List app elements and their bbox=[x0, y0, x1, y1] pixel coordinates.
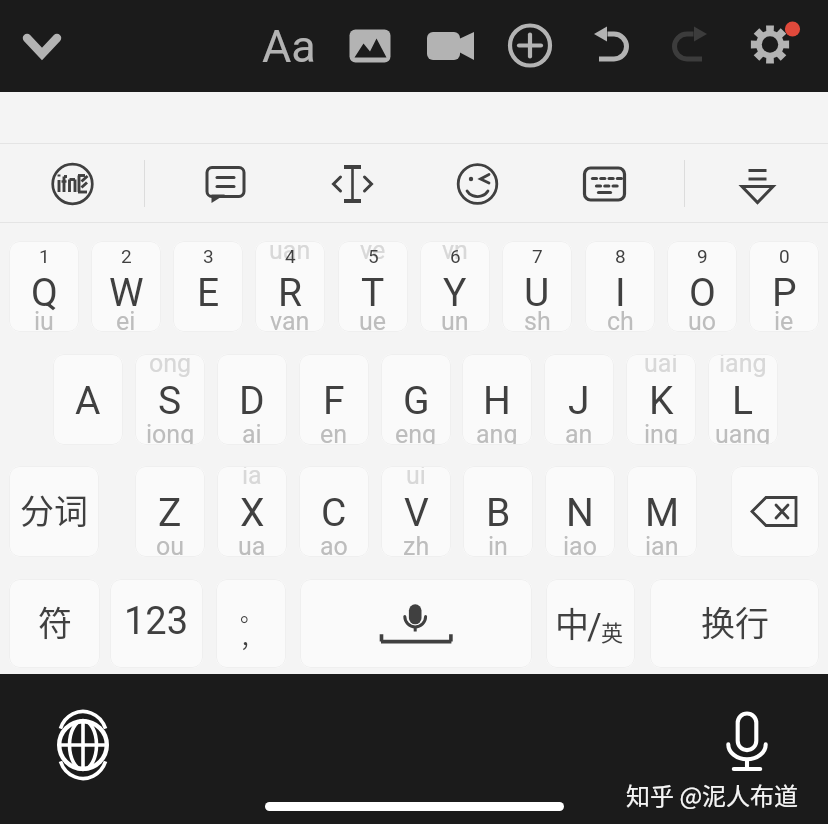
button[interactable]: 0 bbox=[749, 241, 819, 332]
staticText: ou bbox=[156, 532, 185, 557]
staticText: C bbox=[321, 490, 347, 536]
button[interactable]: 7 bbox=[502, 241, 572, 332]
staticText: van bbox=[270, 307, 310, 332]
staticText: J bbox=[568, 378, 590, 424]
button[interactable]: uai bbox=[626, 354, 696, 445]
button[interactable]: Add bbox=[500, 16, 560, 76]
staticText: T bbox=[361, 270, 385, 316]
button[interactable]: More tools bbox=[737, 158, 778, 210]
button[interactable]: ui bbox=[381, 466, 451, 557]
staticText: ai bbox=[242, 420, 262, 445]
staticText: uai bbox=[644, 354, 678, 378]
staticText: ong bbox=[149, 354, 192, 378]
staticText: Y bbox=[443, 270, 467, 316]
button[interactable]: Input method logo bbox=[52, 158, 93, 210]
button[interactable]: A bbox=[53, 354, 123, 445]
staticText: 0 bbox=[779, 245, 790, 267]
staticText: eng bbox=[395, 420, 437, 445]
button[interactable]: Collapse keyboard bbox=[12, 16, 72, 76]
staticText: R bbox=[278, 270, 303, 316]
button[interactable]: 分词 bbox=[9, 466, 99, 557]
button[interactable]: H bbox=[462, 354, 532, 445]
button[interactable]: Insert image bbox=[340, 16, 400, 76]
staticText: Q bbox=[31, 270, 58, 316]
button[interactable] bbox=[731, 466, 819, 557]
staticText: / bbox=[587, 606, 602, 648]
button[interactable]: Punctuation bbox=[216, 579, 286, 668]
staticText: G bbox=[403, 378, 430, 424]
button[interactable]: Phrases bbox=[205, 158, 246, 210]
staticText: iang bbox=[719, 354, 767, 378]
staticText: ch bbox=[607, 307, 634, 332]
button[interactable]: Settings bbox=[740, 16, 800, 76]
button[interactable]: 2 bbox=[91, 241, 161, 332]
button[interactable]: Move cursor bbox=[332, 158, 373, 210]
staticText: Aa bbox=[262, 20, 316, 73]
staticText: uan bbox=[269, 241, 311, 265]
button[interactable]: 9 bbox=[667, 241, 737, 332]
button[interactable]: Switch input language bbox=[51, 713, 115, 777]
button[interactable]: J bbox=[544, 354, 614, 445]
staticText: vn bbox=[442, 241, 468, 265]
staticText: uo bbox=[688, 307, 717, 332]
staticText: V bbox=[404, 490, 429, 536]
staticText: 换行 bbox=[701, 597, 769, 646]
staticText: 英 bbox=[601, 615, 624, 647]
button[interactable]: vn bbox=[420, 241, 490, 332]
staticText: P bbox=[772, 270, 797, 316]
staticText: ian bbox=[645, 532, 679, 557]
button[interactable]: Keyboard layout bbox=[584, 158, 625, 210]
staticText: 。 bbox=[240, 595, 263, 627]
button[interactable]: Z bbox=[135, 466, 205, 557]
button[interactable]: B bbox=[463, 466, 533, 557]
button[interactable]: 中 bbox=[546, 579, 635, 668]
staticText: an bbox=[565, 420, 593, 445]
button[interactable]: C bbox=[299, 466, 369, 557]
button[interactable]: G bbox=[381, 354, 451, 445]
staticText: 123 bbox=[124, 599, 189, 644]
button[interactable]: 换行 bbox=[650, 579, 819, 668]
button[interactable]: ong bbox=[135, 354, 205, 445]
button[interactable]: Voice input bbox=[715, 709, 779, 773]
staticText: ing bbox=[644, 420, 678, 445]
button[interactable]: ia bbox=[217, 466, 287, 557]
button[interactable]: 符 bbox=[9, 579, 100, 668]
staticText: 1 bbox=[39, 245, 50, 267]
staticText: un bbox=[441, 307, 469, 332]
staticText: ue bbox=[359, 307, 387, 332]
staticText: iao bbox=[563, 532, 597, 557]
staticText: in bbox=[488, 532, 508, 557]
button[interactable]: 8 bbox=[585, 241, 655, 332]
staticText: 3 bbox=[203, 245, 214, 267]
button[interactable]: 1 bbox=[9, 241, 79, 332]
staticText: ia bbox=[242, 466, 262, 490]
button[interactable]: 3 bbox=[173, 241, 243, 332]
staticText: ang bbox=[476, 420, 518, 445]
button[interactable]: uan bbox=[255, 241, 325, 332]
staticText: 符 bbox=[38, 597, 72, 646]
button[interactable]: 123 bbox=[110, 579, 203, 668]
staticText: H bbox=[483, 378, 511, 424]
staticText: 分词 bbox=[20, 485, 88, 534]
staticText: 中 bbox=[555, 598, 589, 647]
button[interactable]: F bbox=[299, 354, 369, 445]
staticText: F bbox=[323, 378, 345, 424]
staticText: Z bbox=[158, 490, 182, 536]
button[interactable]: iang bbox=[708, 354, 778, 445]
button[interactable]: Space, hold for voice input bbox=[300, 579, 532, 668]
button[interactable]: M bbox=[627, 466, 697, 557]
button[interactable]: Undo bbox=[581, 16, 641, 76]
button[interactable]: Emoji bbox=[457, 158, 498, 210]
staticText: ve bbox=[360, 241, 386, 265]
staticText: 6 bbox=[450, 245, 461, 267]
button[interactable]: Text style bbox=[258, 11, 320, 81]
button[interactable]: Insert video bbox=[420, 16, 480, 76]
staticText: iong bbox=[146, 420, 195, 445]
button[interactable]: ve bbox=[338, 241, 408, 332]
button[interactable]: D bbox=[217, 354, 287, 445]
button[interactable]: Redo bbox=[660, 16, 720, 76]
button[interactable]: N bbox=[545, 466, 615, 557]
staticText: 7 bbox=[532, 245, 543, 267]
staticText: U bbox=[524, 270, 550, 316]
staticText: E bbox=[197, 270, 220, 316]
